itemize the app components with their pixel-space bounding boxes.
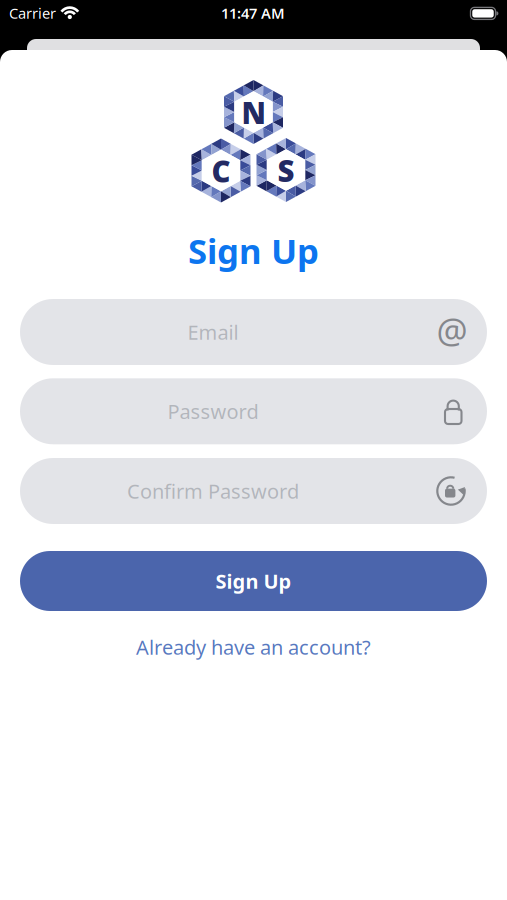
staticText: Sign Up (215, 568, 291, 594)
button[interactable]: Password (20, 378, 487, 444)
staticText: C (211, 151, 230, 190)
staticText: N (241, 93, 265, 132)
button[interactable]: Confirm Password (20, 458, 487, 524)
staticText: Password (167, 398, 258, 425)
staticText: Carrier (9, 3, 56, 23)
staticText: Already have an account? (136, 634, 371, 660)
staticText: S (277, 151, 294, 190)
staticText: @ (436, 307, 467, 353)
button[interactable]: Sign Up (20, 551, 487, 611)
button[interactable]: Already have an account? (136, 634, 371, 660)
staticText: Confirm Password (127, 478, 299, 504)
staticText: 11:47 AM (221, 3, 285, 23)
staticText: Sign Up (188, 227, 319, 273)
staticText: Email (187, 319, 238, 345)
button[interactable]: Email (20, 299, 487, 365)
